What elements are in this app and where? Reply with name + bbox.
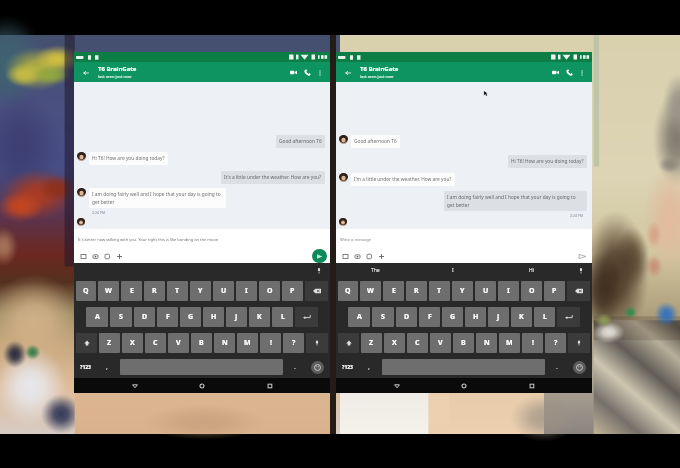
button[interactable]: J <box>488 307 509 327</box>
button[interactable]: Emoji <box>307 359 328 375</box>
button[interactable]: W <box>98 281 119 301</box>
button[interactable]: Recents <box>263 379 277 393</box>
button[interactable]: I <box>236 281 257 301</box>
button[interactable]: Enter <box>557 307 580 327</box>
button[interactable]: V <box>168 333 189 353</box>
button[interactable]: Gallery <box>77 250 89 262</box>
button[interactable]: Send <box>576 250 589 263</box>
button[interactable]: L <box>272 307 293 327</box>
button[interactable]: Gallery <box>339 250 351 262</box>
button[interactable]: I <box>498 281 519 301</box>
button[interactable]: G <box>180 307 201 327</box>
button[interactable]: Shift <box>338 333 359 353</box>
button[interactable]: H <box>203 307 224 327</box>
button[interactable]: Add <box>113 250 125 262</box>
button[interactable]: Q <box>76 281 96 301</box>
button[interactable]: C <box>407 333 428 353</box>
button[interactable]: K <box>249 307 270 327</box>
button[interactable]: D <box>396 307 417 327</box>
button[interactable]: Z <box>361 333 382 353</box>
button[interactable]: Camera <box>351 250 363 262</box>
button[interactable]: Home <box>457 379 471 393</box>
button[interactable]: P <box>544 281 565 301</box>
button[interactable]: Call <box>562 65 576 79</box>
button[interactable]: Backspace <box>305 281 328 301</box>
button[interactable]: J <box>226 307 247 327</box>
button[interactable]: Call <box>300 65 314 79</box>
button[interactable]: U <box>475 281 496 301</box>
button[interactable]: More options <box>576 67 587 78</box>
button[interactable]: Back <box>79 66 92 79</box>
button[interactable]: S <box>110 307 132 327</box>
button[interactable]: K <box>511 307 532 327</box>
button[interactable]: Back <box>390 379 404 393</box>
button[interactable]: B <box>191 333 212 353</box>
button[interactable]: The <box>336 263 414 278</box>
button[interactable]: O <box>259 281 280 301</box>
button[interactable]: Voice input <box>570 263 592 278</box>
button[interactable]: I <box>414 263 492 278</box>
button[interactable]: Z <box>99 333 120 353</box>
button[interactable]: N <box>214 333 235 353</box>
button[interactable]: Enter <box>295 307 318 327</box>
button[interactable]: F <box>157 307 178 327</box>
button[interactable]: Emoji <box>569 359 590 375</box>
button[interactable]: G <box>442 307 463 327</box>
button[interactable]: Sticker <box>101 250 113 262</box>
button[interactable]: Voice input <box>308 263 330 278</box>
button[interactable]: Voice input <box>306 333 328 353</box>
button[interactable]: R <box>144 281 165 301</box>
button[interactable]: Y <box>452 281 473 301</box>
button[interactable]: O <box>521 281 542 301</box>
button[interactable]: Send <box>312 249 327 263</box>
button[interactable]: Shift <box>76 333 97 353</box>
button[interactable]: Period <box>285 359 305 375</box>
button[interactable]: Camera <box>89 250 101 262</box>
button[interactable]: Period <box>547 359 567 375</box>
button[interactable]: F <box>419 307 440 327</box>
button[interactable]: Recents <box>525 379 539 393</box>
button[interactable]: B <box>453 333 474 353</box>
button[interactable]: H <box>465 307 486 327</box>
button[interactable]: Comma <box>96 359 118 375</box>
button[interactable]: Comma <box>358 359 380 375</box>
button[interactable]: A <box>348 307 370 327</box>
button[interactable]: M <box>499 333 520 353</box>
button[interactable]: L <box>534 307 555 327</box>
button[interactable]: X <box>122 333 143 353</box>
button[interactable]: Backspace <box>567 281 590 301</box>
button[interactable]: Home <box>195 379 209 393</box>
button[interactable]: Back <box>128 379 142 393</box>
button[interactable]: Q <box>338 281 358 301</box>
button[interactable]: ! <box>522 333 543 353</box>
button[interactable]: Back <box>341 66 354 79</box>
button[interactable]: V <box>430 333 451 353</box>
button[interactable]: U <box>213 281 234 301</box>
button[interactable]: Voice input <box>568 333 590 353</box>
button[interactable]: C <box>145 333 166 353</box>
button[interactable]: T <box>167 281 188 301</box>
button[interactable]: D <box>134 307 155 327</box>
button[interactable]: W <box>360 281 381 301</box>
button[interactable]: Y <box>190 281 211 301</box>
button[interactable]: ? <box>283 333 304 353</box>
button[interactable]: ? <box>545 333 566 353</box>
button[interactable]: M <box>237 333 258 353</box>
button[interactable]: R <box>406 281 427 301</box>
button[interactable]: ?123 <box>338 359 356 375</box>
button[interactable]: More options <box>314 67 325 78</box>
button[interactable]: Video call <box>286 65 300 79</box>
button[interactable]: ?123 <box>76 359 94 375</box>
button[interactable]: X <box>384 333 405 353</box>
button[interactable]: S <box>372 307 394 327</box>
button[interactable]: N <box>476 333 497 353</box>
button[interactable]: ! <box>260 333 281 353</box>
button[interactable]: E <box>383 281 404 301</box>
button[interactable]: Add <box>375 250 387 262</box>
button[interactable]: E <box>121 281 142 301</box>
button[interactable]: Video call <box>548 65 562 79</box>
button[interactable]: T <box>429 281 450 301</box>
button[interactable]: Sticker <box>363 250 375 262</box>
